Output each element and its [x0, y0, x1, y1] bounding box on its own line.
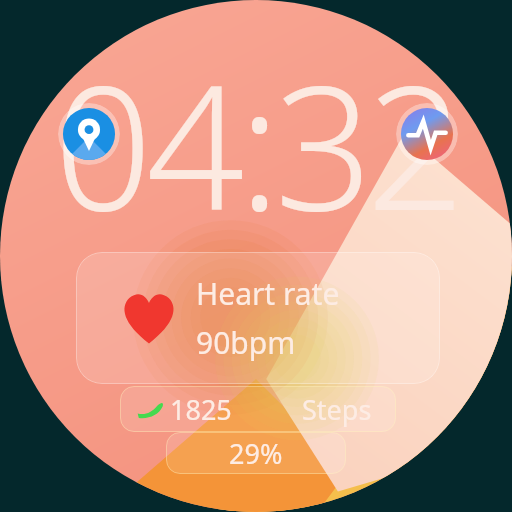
- staticText: 90bpm: [196, 322, 296, 363]
- staticText: Steps: [302, 391, 372, 428]
- staticText: Heart rate: [196, 273, 340, 314]
- button[interactable]: 29%: [166, 432, 346, 474]
- staticText: 04:32: [54, 26, 459, 260]
- button[interactable]: Heart rate: [76, 252, 440, 384]
- staticText: 29%: [229, 435, 283, 472]
- button[interactable]: 1825: [120, 386, 396, 432]
- button[interactable]: Maps: [58, 103, 120, 165]
- button[interactable]: Heart rate app: [396, 103, 458, 165]
- staticText: 1825: [170, 391, 232, 428]
